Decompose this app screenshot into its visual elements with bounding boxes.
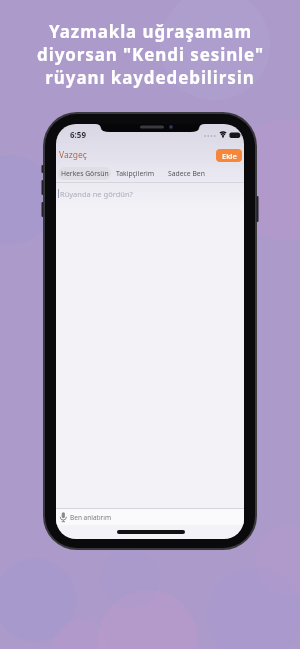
button[interactable]: Vazgeç (59, 149, 87, 161)
staticText: Ben anlatırım (70, 513, 112, 522)
staticText: Takipçilerim (116, 169, 155, 178)
staticText: Sadece Ben (168, 169, 205, 178)
button[interactable]: Herkes Görsün (58, 167, 111, 180)
button[interactable]: Sadece Ben (166, 167, 206, 180)
staticText: rüyanı kaydedebilirsin (45, 66, 255, 89)
staticText: Yazmakla uğraşamam (49, 20, 252, 43)
button[interactable]: Ben anlatırım (56, 509, 244, 525)
button[interactable]: Ekle (216, 149, 242, 162)
staticText: Herkes Görsün (61, 169, 109, 178)
staticText: Ekle (222, 151, 237, 161)
staticText: diyorsan "Kendi sesinle" (37, 43, 264, 66)
staticText: 6:59 (70, 129, 86, 140)
staticText: Rüyanda ne gördün? (60, 189, 133, 199)
button[interactable]: Takipçilerim (114, 167, 156, 180)
